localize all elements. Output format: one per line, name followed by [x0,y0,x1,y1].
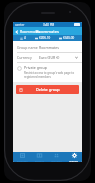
staticText: 4 [24,36,26,40]
staticText: Members [51,159,62,162]
staticText: €345.00 [63,36,75,40]
staticText: carrier [15,23,25,27]
staticText: Roommates [36,29,60,34]
button[interactable]: Group name [13,43,82,52]
button[interactable]: Settings [65,152,82,162]
staticText: Delete group [36,87,60,92]
staticText: Balance [35,159,44,162]
button[interactable]: Currency [13,53,82,62]
button[interactable]: Private group [13,63,82,81]
staticText: Group name [17,45,39,50]
button[interactable]: Balance [31,152,48,162]
button[interactable]: Delete group [16,85,79,94]
staticText: Roommates [39,45,78,50]
button[interactable]: €206.10 [34,36,52,40]
staticText: €206.10 [39,36,51,40]
button[interactable]: Expenses [13,152,31,162]
staticText: Expenses [17,159,28,162]
staticText: Restrict access to group's web page to r… [24,71,78,79]
staticText: Currency [17,55,39,60]
button[interactable]: Members [48,152,65,162]
staticText: Euro (EUR €) [39,55,75,60]
staticText: Private group [24,65,47,70]
button[interactable]: €345.00 [58,36,76,40]
button[interactable]: 4 [19,36,27,40]
staticText: Roommates [20,29,40,34]
button[interactable]: Roommates [13,28,43,35]
staticText: 3:40 PM [43,23,55,27]
staticText: Settings [69,159,79,162]
